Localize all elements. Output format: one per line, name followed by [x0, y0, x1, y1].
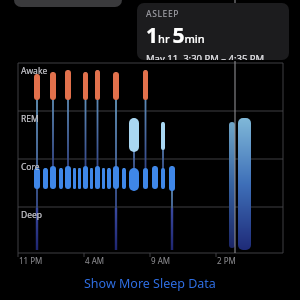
- staticText: REM: [21, 113, 39, 125]
- staticText: ASLEEP: [146, 8, 180, 20]
- button[interactable]: Show More Sleep Data: [0, 275, 300, 300]
- staticText: 2 PM: [217, 255, 236, 266]
- staticText: Core: [21, 161, 40, 173]
- staticText: May 11, 3:30 PM – 4:35 PM: [146, 52, 265, 60]
- staticText: Deep: [21, 209, 43, 221]
- staticText: 1hr 5min: [146, 21, 205, 50]
- button[interactable]: ASLEEP: [137, 3, 289, 60]
- staticText: 4 AM: [85, 255, 105, 266]
- staticText: Show More Sleep Data: [84, 275, 216, 292]
- staticText: 11 PM: [19, 255, 43, 266]
- staticText: Awake: [21, 65, 48, 77]
- staticText: 9 AM: [151, 255, 171, 266]
